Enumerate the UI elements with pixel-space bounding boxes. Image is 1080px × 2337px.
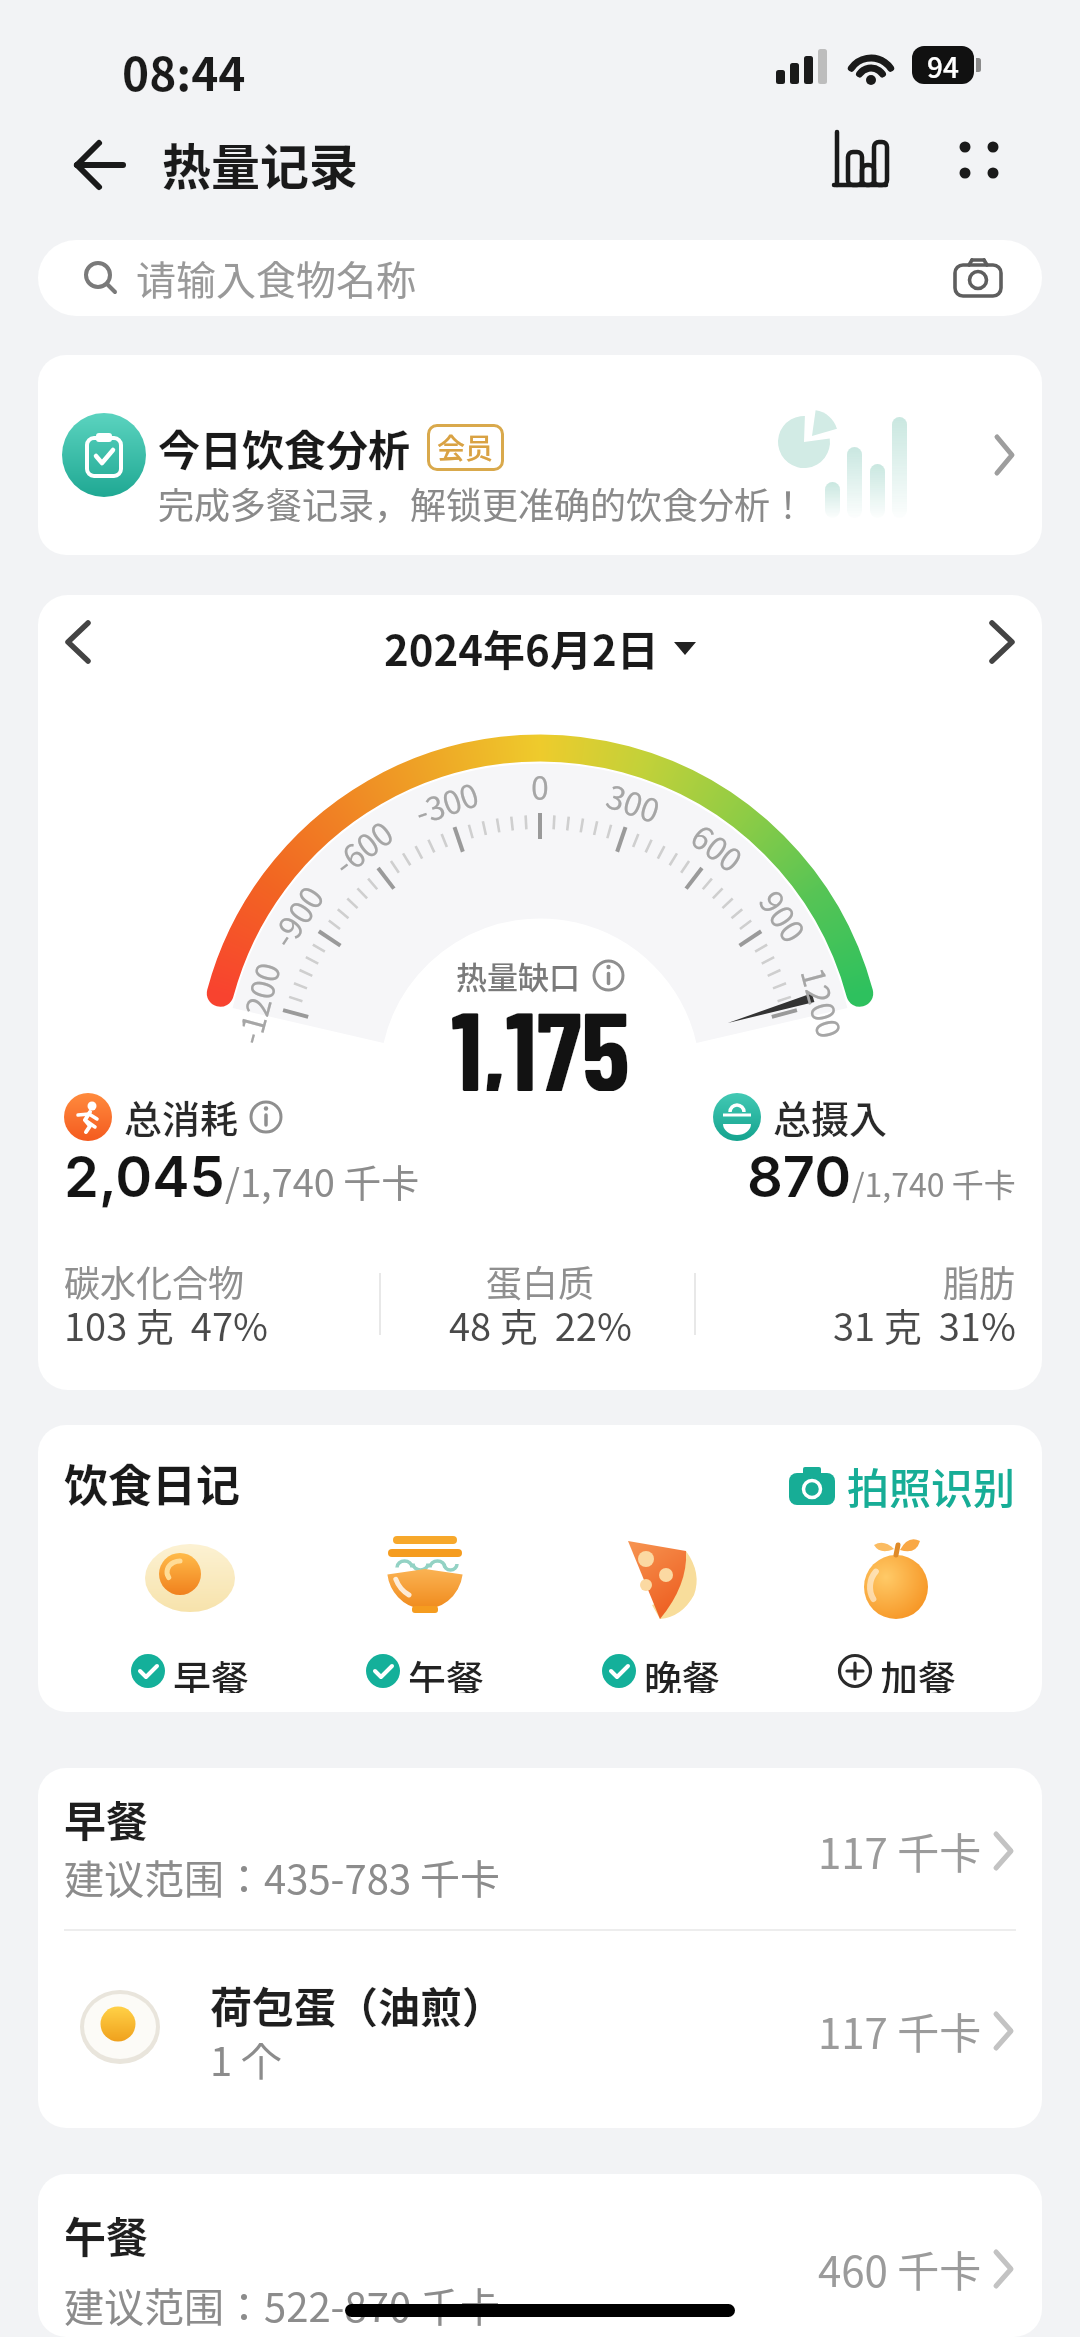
button[interactable]: 117 千卡 [818,1820,1014,1881]
staticText: 会员 [437,427,494,468]
staticText: /1,740 千卡 [225,1153,420,1208]
staticText: 600 [683,812,753,882]
staticText: 1 个 [210,2030,282,2088]
staticText: 建议范围：522-870 千卡 [64,2276,501,2334]
staticText: -1200 [224,956,290,1049]
staticText: 900 [750,881,818,951]
staticText: 完成多餐记录，解锁更准确的饮食分析！ [158,477,807,529]
staticText: 总摄入 [773,1089,888,1144]
staticText: 热量记录 [162,128,359,199]
button[interactable]: 午餐 [363,1649,487,1693]
staticText: -300 [408,770,485,834]
staticText: 午餐 [408,1649,485,1693]
staticText: 蛋白质 [486,1255,595,1307]
staticText: 建议范围：435-783 千卡 [64,1848,501,1906]
button[interactable]: 早餐 [128,1649,252,1693]
staticText: 热量缺口 [456,953,580,998]
button[interactable]: 午餐 [38,2174,1042,2337]
staticText: 1200 [791,962,855,1044]
button[interactable] [46,607,110,677]
staticText: 48 克 22% [449,1297,632,1352]
staticText: 1,175 [451,981,630,1091]
staticText: 早餐 [64,1788,149,1849]
staticText: 103 克 47% [64,1297,268,1352]
staticText: 460 千卡 [818,2238,982,2299]
button[interactable]: 早餐 [38,1768,1042,1928]
staticText: 300 [601,771,667,832]
button[interactable] [60,130,140,200]
staticText: 请输入食物名称 [136,249,416,307]
staticText: 晚餐 [644,1649,721,1693]
staticText: 870 [747,1143,852,1211]
staticText: 拍照识别 [847,1455,1016,1516]
staticText: 31 克 31% [833,1297,1016,1352]
button[interactable] [970,607,1034,677]
staticText: -900 [259,876,333,955]
button[interactable]: 加餐 [835,1649,959,1693]
staticText: -600 [323,809,402,885]
staticText: 2,045 [64,1143,225,1211]
button[interactable] [995,435,1015,475]
button[interactable]: 晚餐 [599,1649,723,1693]
staticText: 脂肪 [943,1255,1016,1307]
button[interactable]: 2024年6月2日 [384,617,697,678]
staticText: /1,740 千卡 [852,1160,1016,1206]
button[interactable]: 今日饮食分析 [38,355,1042,555]
button[interactable]: 拍照识别 [789,1455,1016,1516]
button[interactable] [954,258,1002,298]
button[interactable] [818,118,902,202]
staticText: 08:44 [122,38,246,105]
staticText: 117 千卡 [818,2000,982,2061]
button[interactable]: 请输入食物名称 [38,240,1042,316]
staticText: 117 千卡 [818,1820,982,1881]
staticText: 今日饮食分析 [158,417,411,478]
staticText: 总消耗 [124,1089,239,1144]
button[interactable] [249,1100,283,1134]
staticText: 2024年6月2日 [384,617,659,678]
staticText: 0 [531,763,549,809]
staticText: 午餐 [64,2204,149,2265]
staticText: 94 [927,46,959,84]
staticText: 碳水化合物 [64,1255,245,1307]
staticText: 荷包蛋（油煎） [210,1974,505,2035]
staticText: 加餐 [880,1649,957,1693]
button[interactable] [936,118,1022,202]
button[interactable]: 荷包蛋（油煎） [38,1938,1042,2108]
staticText: 饮食日记 [64,1451,240,1515]
staticText: 早餐 [173,1649,250,1693]
